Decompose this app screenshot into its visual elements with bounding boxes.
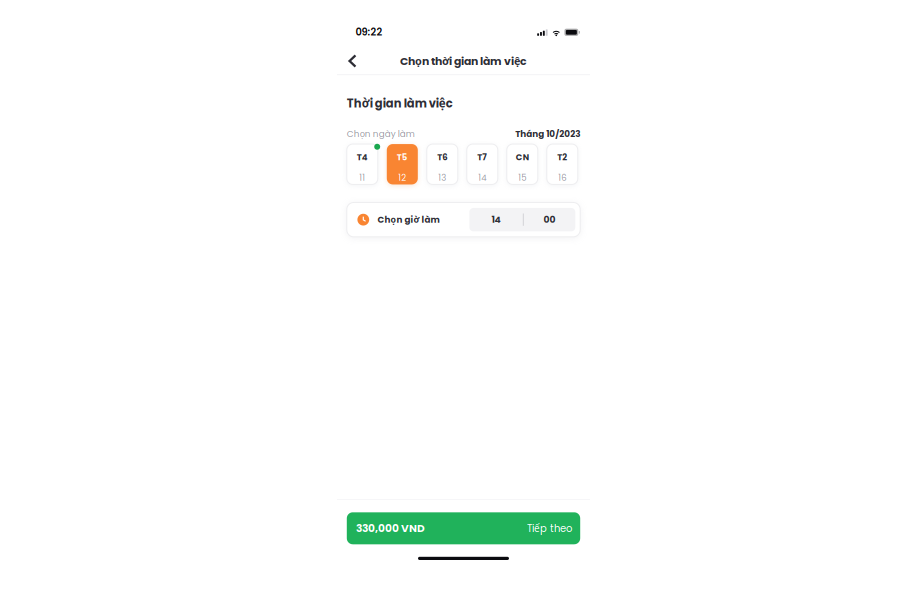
- staticText: 14: [478, 172, 486, 184]
- staticText: T2: [557, 151, 567, 163]
- button[interactable]: T7: [467, 144, 498, 184]
- staticText: 15: [518, 172, 526, 184]
- staticText: 00: [544, 213, 556, 226]
- button[interactable]: T4: [347, 144, 378, 184]
- staticText: 330,000 VND: [356, 521, 425, 536]
- staticText: 12: [398, 172, 406, 184]
- staticText: T7: [477, 151, 487, 163]
- staticText: 13: [438, 172, 446, 184]
- staticText: 11: [359, 172, 365, 184]
- staticText: T5: [397, 151, 408, 163]
- staticText: CN: [516, 151, 529, 163]
- button[interactable]: T5: [387, 144, 418, 184]
- staticText: T4: [357, 151, 368, 163]
- button[interactable]: Chọn giờ làm: [347, 202, 580, 237]
- staticText: 09:22: [355, 25, 382, 39]
- staticText: Chọn giờ làm: [377, 213, 439, 226]
- staticText: 16: [558, 172, 566, 184]
- staticText: Thời gian làm việc: [347, 95, 453, 112]
- staticText: Tiếp theo: [527, 521, 572, 535]
- button[interactable]: 330,000 VND: [347, 512, 580, 544]
- staticText: T6: [437, 151, 447, 163]
- button[interactable]: T2: [547, 144, 578, 184]
- staticText: Tháng 10/2023: [515, 128, 580, 140]
- button[interactable]: CN: [507, 144, 538, 184]
- button[interactable]: T6: [427, 144, 458, 184]
- staticText: Chọn thời gian làm việc: [400, 53, 527, 69]
- staticText: 14: [492, 213, 501, 226]
- button[interactable]: Back: [339, 48, 365, 74]
- staticText: Chọn ngày làm: [347, 128, 415, 140]
